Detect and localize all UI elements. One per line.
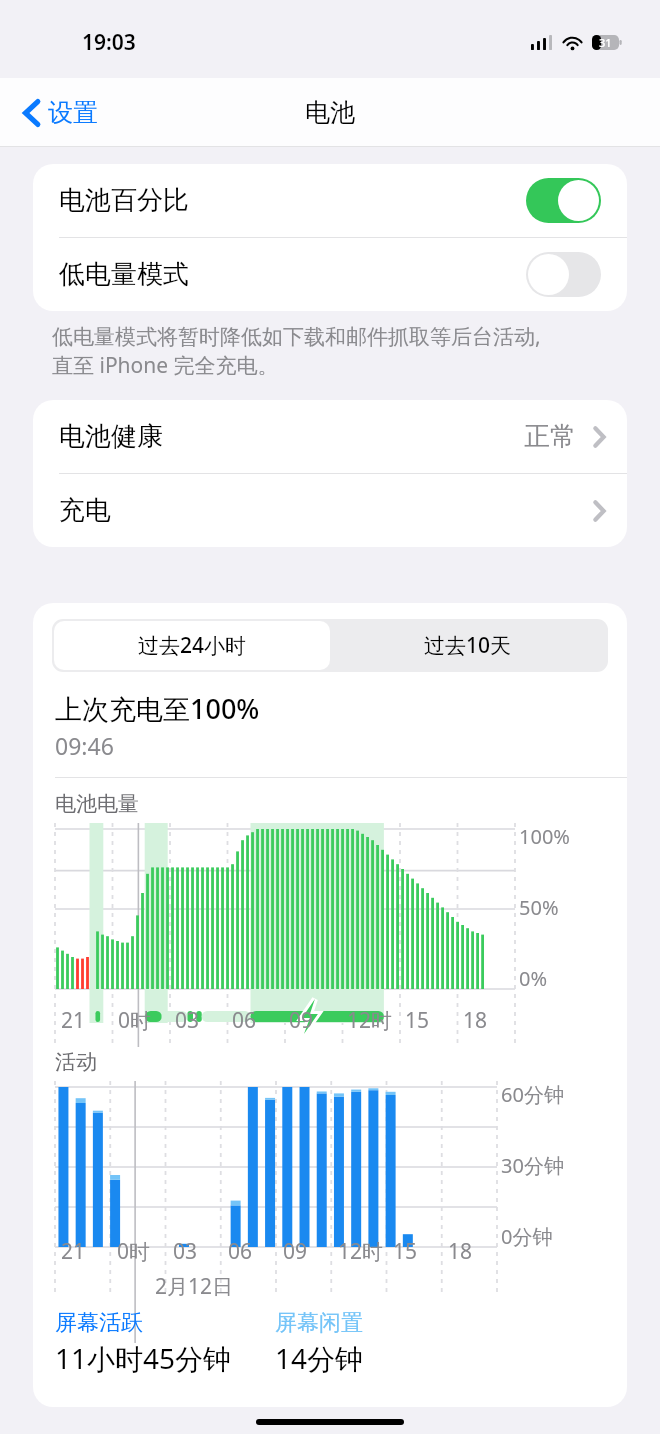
staticText: 低电量模式 bbox=[59, 258, 189, 291]
staticText: 11小时45分钟 bbox=[55, 1339, 232, 1377]
staticText: 18 bbox=[448, 1237, 473, 1266]
staticText: 直至 iPhone 完全充电。 bbox=[52, 351, 279, 380]
button[interactable]: 过去10天 bbox=[330, 621, 606, 670]
staticText: 100% bbox=[519, 823, 570, 850]
staticText: 15 bbox=[393, 1237, 418, 1266]
button[interactable]: 设置 bbox=[18, 91, 104, 134]
staticText: 屏幕活跃 bbox=[55, 1309, 143, 1337]
staticText: 0时 bbox=[118, 1006, 152, 1035]
staticText: 09 bbox=[283, 1237, 308, 1266]
button[interactable]: 过去24小时 bbox=[54, 621, 330, 670]
staticText: 31 bbox=[599, 35, 612, 50]
staticText: 03 bbox=[173, 1237, 198, 1266]
staticText: 过去10天 bbox=[424, 631, 512, 660]
staticText: 电池电量 bbox=[55, 791, 139, 817]
staticText: 过去24小时 bbox=[138, 631, 247, 660]
staticText: 21 bbox=[61, 1006, 86, 1035]
staticText: 0时 bbox=[117, 1237, 151, 1266]
staticText: 0% bbox=[519, 965, 548, 992]
staticText: 21 bbox=[61, 1237, 86, 1266]
staticText: 18 bbox=[463, 1006, 488, 1035]
staticText: 电池健康 bbox=[59, 420, 163, 453]
staticText: 50% bbox=[519, 894, 559, 921]
staticText: 09:46 bbox=[55, 730, 114, 761]
staticText: 0分钟 bbox=[501, 1223, 553, 1250]
staticText: 15 bbox=[405, 1006, 430, 1035]
button[interactable]: 低电量模式 bbox=[33, 238, 627, 311]
staticText: 正常 bbox=[524, 420, 576, 453]
staticText: 06 bbox=[228, 1237, 253, 1266]
staticText: 09 bbox=[289, 1006, 314, 1035]
staticText: 19:03 bbox=[82, 28, 136, 57]
staticText: 12时 bbox=[347, 1006, 393, 1035]
staticText: 12时 bbox=[338, 1237, 384, 1266]
staticText: 2月12日 bbox=[155, 1272, 234, 1301]
staticText: 屏幕闲置 bbox=[275, 1309, 363, 1337]
staticText: 电池 bbox=[305, 97, 355, 128]
button[interactable]: 电池健康 bbox=[33, 400, 627, 473]
staticText: 14分钟 bbox=[275, 1339, 364, 1377]
staticText: 活动 bbox=[55, 1049, 97, 1075]
staticText: 电池百分比 bbox=[59, 184, 189, 217]
button[interactable]: 充电 bbox=[33, 474, 627, 547]
button[interactable]: 电池百分比 bbox=[33, 164, 627, 237]
staticText: 60分钟 bbox=[501, 1081, 564, 1108]
staticText: 低电量模式将暂时降低如下载和邮件抓取等后台活动, bbox=[52, 322, 541, 351]
staticText: 03 bbox=[175, 1006, 200, 1035]
staticText: 06 bbox=[232, 1006, 257, 1035]
staticText: 上次充电至100% bbox=[55, 690, 260, 727]
staticText: 30分钟 bbox=[501, 1152, 564, 1179]
staticText: 设置 bbox=[48, 97, 98, 128]
staticText: 充电 bbox=[59, 494, 111, 527]
